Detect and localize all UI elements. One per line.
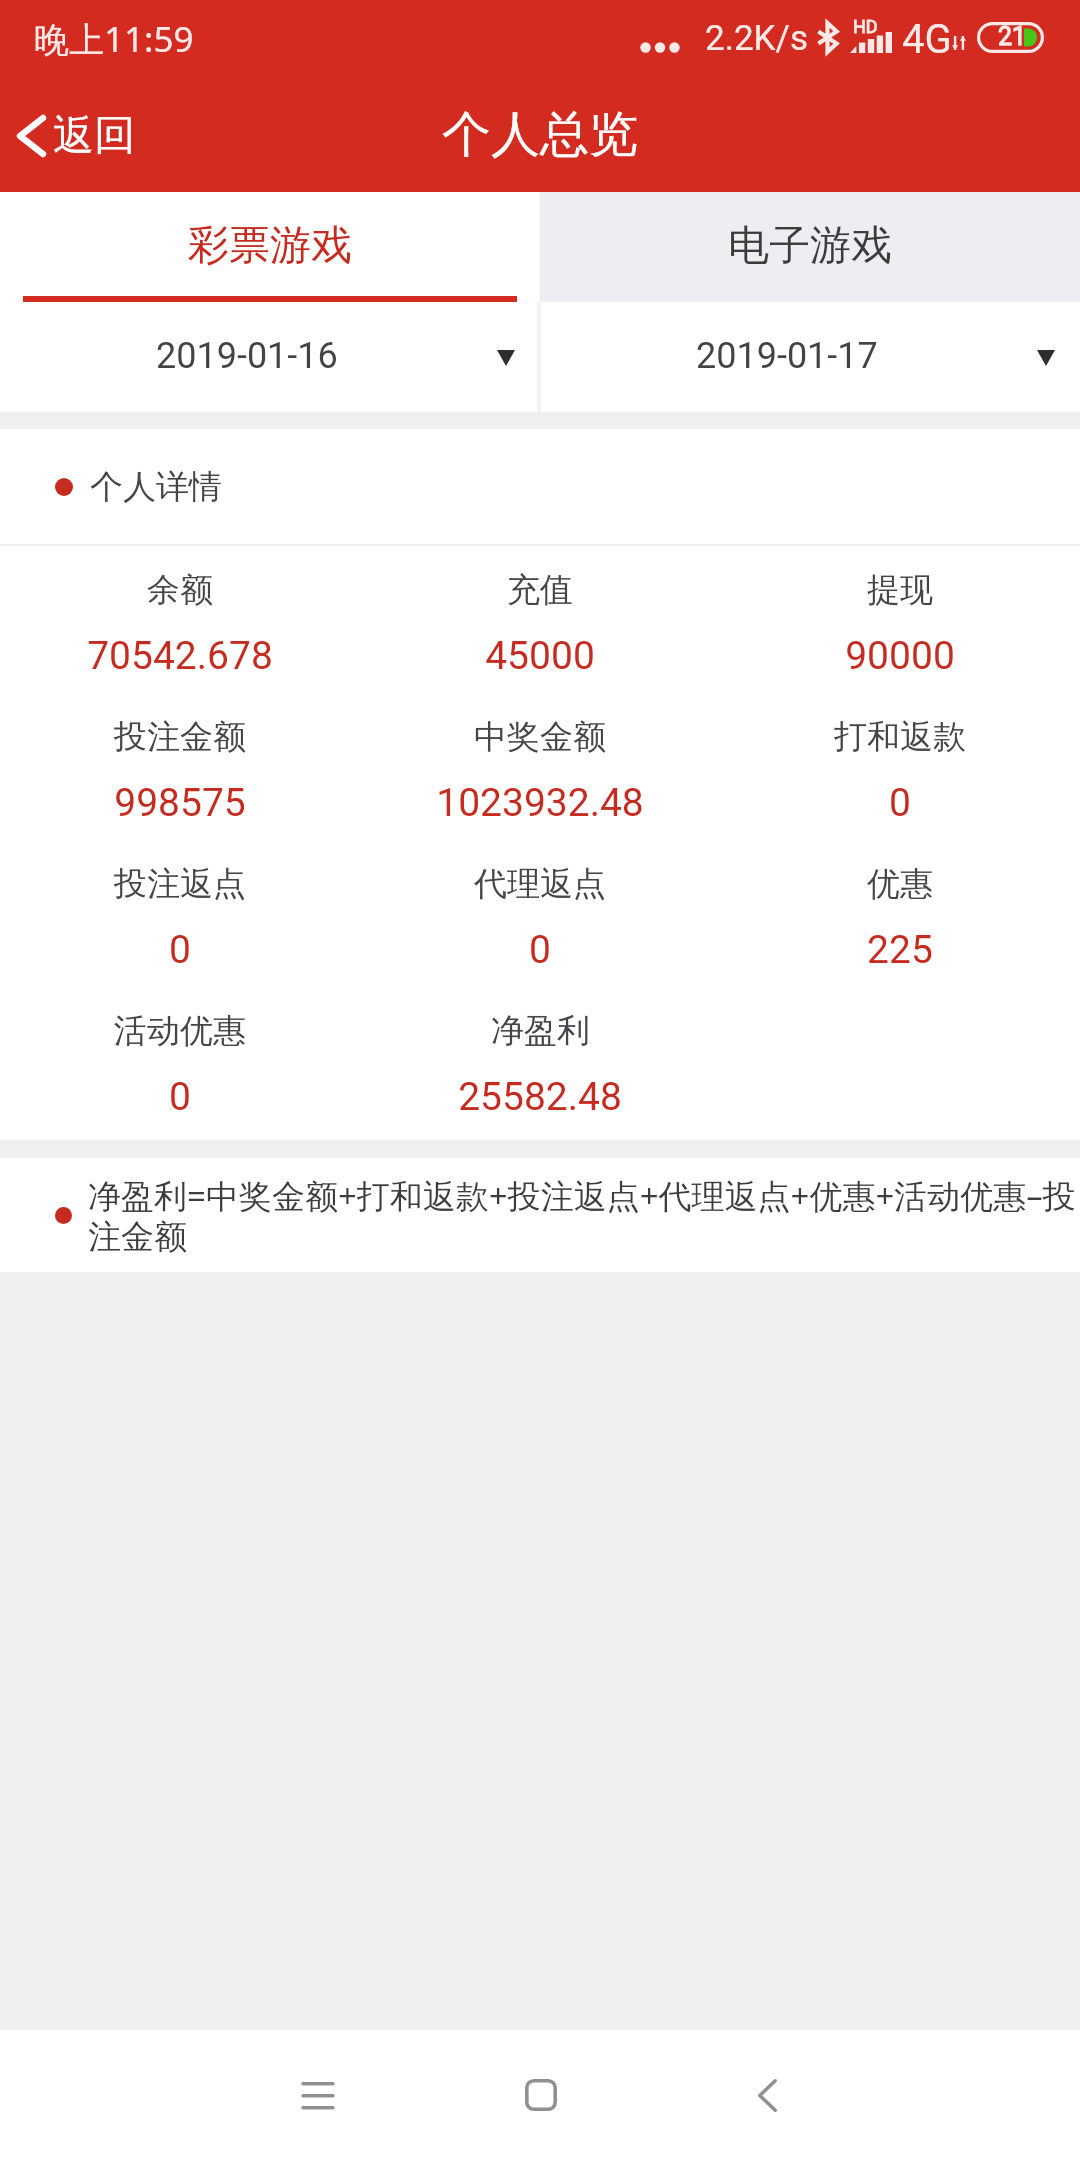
staticText: 0 [169,1074,191,1120]
staticText: 提现 [867,569,933,611]
staticText: 代理返点 [474,863,606,905]
staticText: 2019-01-16 [156,335,338,377]
staticText: 净盈利 [491,1010,590,1052]
staticText: 中奖金额 [474,716,606,758]
staticText: 0 [529,927,551,973]
staticText: 70542.678 [87,633,273,679]
staticText: 2.2K/s [705,18,809,59]
staticText: 返回 [53,110,135,162]
staticText: 90000 [845,633,955,679]
staticText: 2019-01-17 [696,335,878,377]
staticText: 21 [998,22,1027,51]
button[interactable]: Home [431,2030,651,2160]
staticText: 45000 [485,633,595,679]
staticText: 投注返点 [114,863,246,905]
staticText: 个人详情 [90,466,222,508]
staticText: 余额 [147,569,213,611]
staticText: 0 [889,780,911,826]
button[interactable]: 返回 Back [0,80,159,192]
staticText: 电子游戏 [728,220,892,272]
staticText: 投注金额 [114,716,246,758]
staticText: 彩票游戏 [188,220,352,272]
staticText: 净盈利=中奖金额+打和返款+投注返点+代理返点+优惠+活动优惠–投注金额 [88,1173,1078,1258]
staticText: 998575 [114,780,246,826]
staticText: 个人总览 [442,104,638,166]
staticText: 充值 [507,569,573,611]
button[interactable]: 彩票游戏 [0,192,540,302]
staticText: 1023932.48 [436,780,644,826]
staticText: 4G [902,16,952,63]
staticText: 打和返款 [834,716,966,758]
button[interactable]: 2019-01-17 [540,302,1080,412]
button[interactable]: 2019-01-16 [0,302,540,412]
button[interactable]: 电子游戏 [540,192,1080,302]
staticText: 活动优惠 [114,1010,246,1052]
staticText: 225 [867,927,933,973]
staticText: HD [853,16,878,37]
button[interactable]: Back [657,2030,877,2160]
button[interactable]: Recent apps [208,2030,428,2160]
staticText: 0 [169,927,191,973]
staticText: 优惠 [867,863,933,905]
staticText: 25582.48 [458,1074,622,1120]
staticText: 晚上11:59 [34,15,194,63]
